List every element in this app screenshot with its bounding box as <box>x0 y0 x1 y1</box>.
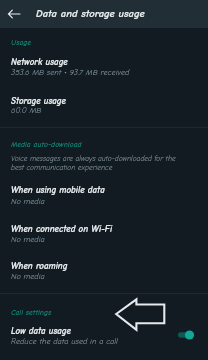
staticText: When using mobile data <box>11 185 105 195</box>
button[interactable] <box>0 219 208 249</box>
button[interactable] <box>0 256 208 286</box>
staticText: When connected on Wi-Fi <box>11 224 113 234</box>
staticText: 60.0 MB <box>11 106 42 115</box>
button[interactable] <box>0 181 208 211</box>
button[interactable] <box>0 52 208 82</box>
button[interactable] <box>0 91 208 121</box>
staticText: No media <box>11 235 45 244</box>
staticText: Data and storage usage <box>36 7 145 19</box>
staticText: When roaming <box>11 261 68 271</box>
staticText: Media auto-download <box>11 140 82 149</box>
staticText: Reduce the data used in a call <box>11 337 118 346</box>
staticText: Voice messages are always auto-downloade… <box>11 154 183 172</box>
staticText: Low data usage <box>11 326 71 336</box>
staticText: No media <box>11 272 45 281</box>
staticText: Usage <box>11 38 32 47</box>
staticText: Network usage <box>11 57 68 67</box>
staticText: 353.6 MB sent • 93.7 MB received <box>11 68 130 77</box>
button[interactable]: Low data usage toggle <box>173 324 199 346</box>
button[interactable]: Back <box>2 2 26 26</box>
staticText: Storage usage <box>11 96 66 106</box>
button[interactable] <box>0 322 208 354</box>
staticText: No media <box>11 197 45 206</box>
staticText: Call settings <box>11 308 52 317</box>
